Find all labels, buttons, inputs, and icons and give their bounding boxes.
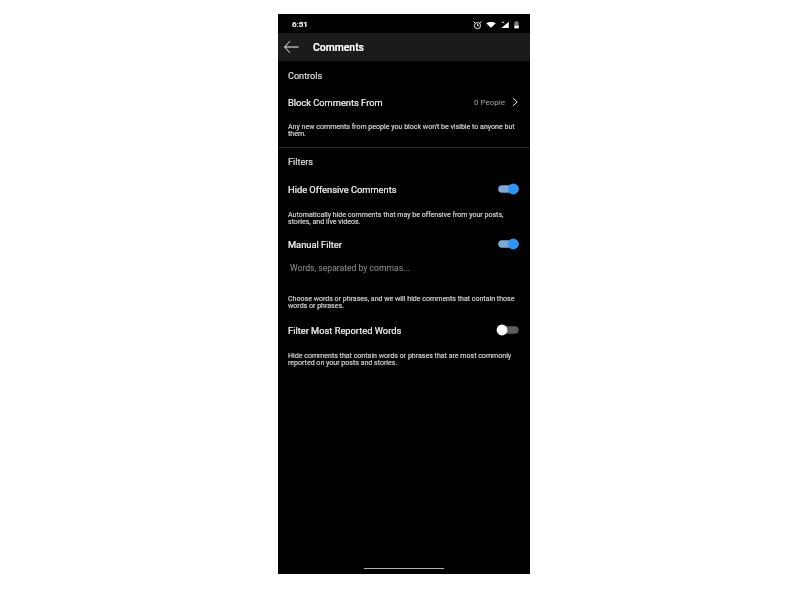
staticText: Automatically hide comments that may be …	[288, 210, 517, 226]
staticText: Filters	[288, 157, 314, 168]
staticText: 6:51	[292, 20, 308, 29]
other: Open	[512, 97, 518, 107]
other: On	[496, 238, 519, 250]
other: On	[496, 183, 519, 195]
button[interactable]: Manual Filter	[278, 230, 530, 258]
staticText: Hide Offensive Comments	[288, 184, 397, 195]
button[interactable]: Navigate back	[281, 37, 301, 56]
button[interactable]: Filter Most Reported Words	[278, 316, 530, 344]
staticText: Block Comments From	[288, 97, 383, 108]
staticText: Manual Filter	[288, 239, 342, 250]
button[interactable]: Hide Offensive Comments	[278, 175, 530, 203]
staticText: Controls	[288, 71, 323, 82]
staticText: Choose words or phrases, and we will hid…	[288, 294, 517, 310]
staticText: Hide comments that contain words or phra…	[288, 351, 517, 367]
button[interactable]: Words, separated by commas...	[278, 255, 530, 277]
button[interactable]: Block Comments From	[278, 88, 530, 116]
staticText: Any new comments from people you block w…	[288, 122, 517, 138]
staticText: Filter Most Reported Words	[288, 325, 402, 336]
staticText: Words, separated by commas...	[290, 263, 410, 273]
other: Off	[496, 324, 519, 336]
staticText: Comments	[313, 41, 364, 53]
staticText: 0 People	[474, 98, 505, 107]
